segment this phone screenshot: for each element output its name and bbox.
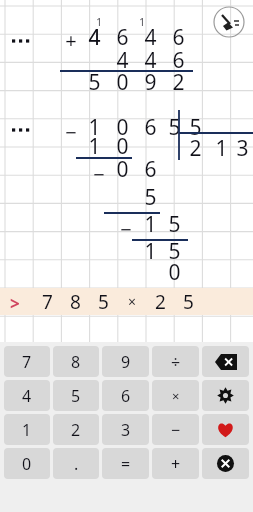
button[interactable]: 4 — [4, 380, 50, 411]
staticText: − — [65, 119, 77, 146]
staticText: 5 — [168, 237, 181, 265]
staticText: + — [171, 453, 181, 475]
staticText: = — [121, 453, 131, 475]
button[interactable]: 0 — [4, 448, 50, 479]
staticText: 2 — [71, 419, 81, 441]
button[interactable]: 3 — [102, 414, 149, 445]
staticText: 1 — [144, 210, 157, 238]
staticText: 5 — [144, 183, 157, 211]
staticText: 5 — [168, 113, 181, 141]
staticText: 4 — [144, 23, 157, 51]
staticText: 6 — [144, 155, 157, 183]
staticText: 1 — [96, 15, 102, 29]
staticText: ÷ — [171, 351, 181, 373]
staticText: 1 — [22, 419, 32, 441]
button[interactable]: xcirc — [202, 448, 249, 479]
staticText: 0 — [116, 68, 129, 96]
staticText: 4 — [116, 46, 129, 74]
staticText: 9 — [144, 68, 157, 96]
button[interactable]: 1 — [4, 414, 50, 445]
button[interactable]: 5 — [53, 380, 99, 411]
staticText: 4 — [88, 23, 101, 51]
button[interactable]: − — [152, 414, 199, 445]
button[interactable]: × — [152, 380, 199, 411]
button[interactable]: heart — [202, 414, 249, 445]
button[interactable]: 6 — [102, 380, 149, 411]
staticText: 8 — [71, 351, 81, 373]
staticText: 0 — [168, 258, 181, 286]
staticText: 0 — [22, 453, 32, 475]
staticText: 1 — [139, 15, 145, 29]
staticText: − — [93, 161, 105, 188]
staticText: 3 — [121, 419, 131, 441]
staticText: 5 — [168, 210, 181, 238]
button[interactable]: > — [0, 288, 253, 315]
staticText: 1 — [215, 134, 228, 162]
button[interactable]: 7 — [4, 346, 50, 377]
button[interactable]: Row menu 2 — [8, 119, 34, 141]
staticText: 6 — [144, 113, 157, 141]
staticText: − — [120, 216, 132, 243]
staticText: 1 — [88, 113, 101, 141]
staticText: 6 — [121, 385, 131, 407]
button[interactable]: 8 — [53, 346, 99, 377]
button[interactable]: Row menu 1 — [8, 30, 34, 52]
staticText: 1 — [88, 132, 101, 160]
staticText: 9 — [121, 351, 131, 373]
staticText: 2 — [189, 134, 202, 162]
button[interactable]: = — [102, 448, 149, 479]
staticText: 0 — [116, 113, 129, 141]
staticText: 5 — [71, 385, 81, 407]
staticText: 4 — [22, 385, 32, 407]
staticText: 7 — [22, 351, 32, 373]
staticText: × — [172, 387, 180, 405]
button[interactable]: Clear all — [212, 5, 246, 39]
staticText: 6 — [172, 23, 185, 51]
staticText: 5 — [183, 289, 194, 315]
button[interactable]: bksp — [202, 346, 249, 377]
staticText: 5 — [189, 113, 202, 141]
button[interactable]: . — [53, 448, 99, 479]
button[interactable]: gear — [202, 380, 249, 411]
staticText: 6 — [172, 46, 185, 74]
staticText: + — [65, 27, 77, 54]
staticText: × — [128, 292, 137, 311]
staticText: 4 — [88, 23, 101, 51]
staticText: 6 — [116, 23, 129, 51]
staticText: 3 — [236, 134, 249, 162]
button[interactable]: + — [152, 448, 199, 479]
button[interactable]: 9 — [102, 346, 149, 377]
staticText: − — [171, 419, 181, 441]
staticText: 5 — [98, 289, 109, 315]
staticText: 2 — [155, 289, 166, 315]
staticText: . — [74, 453, 79, 475]
staticText: 2 — [172, 68, 185, 96]
button[interactable]: ÷ — [152, 346, 199, 377]
staticText: 7 — [42, 289, 53, 315]
staticText: 8 — [70, 289, 81, 315]
staticText: > — [10, 292, 20, 315]
staticText: 5 — [88, 68, 101, 96]
staticText: 0 — [116, 155, 129, 183]
staticText: 1 — [144, 237, 157, 265]
staticText: 0 — [116, 132, 129, 160]
button[interactable]: 2 — [53, 414, 99, 445]
staticText: 4 — [144, 46, 157, 74]
